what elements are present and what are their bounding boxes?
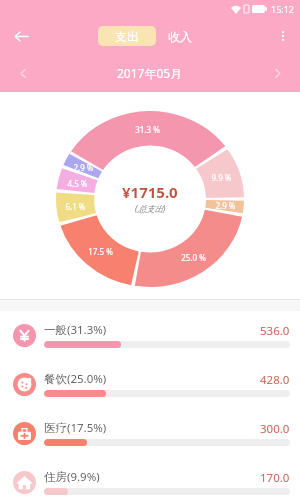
staticText: 支出 bbox=[115, 29, 139, 44]
staticText: 25.0 % bbox=[181, 252, 206, 263]
staticText: 6.1 % bbox=[65, 201, 86, 212]
staticText: 4.5 % bbox=[67, 178, 88, 189]
button[interactable]: 一般(31.3%) bbox=[0, 311, 300, 360]
staticText: 住房(9.9%) bbox=[44, 469, 100, 485]
staticText: 428.0 bbox=[260, 372, 290, 388]
staticText: 31.3 % bbox=[135, 124, 160, 135]
button[interactable]: Previous month bbox=[10, 60, 36, 86]
staticText: 300.0 bbox=[260, 421, 290, 437]
staticText: 医疗(17.5%) bbox=[44, 420, 107, 436]
button[interactable]: Back bbox=[6, 21, 36, 51]
staticText: 9.9 % bbox=[211, 172, 232, 183]
staticText: (总支出) bbox=[135, 203, 166, 215]
staticText: ¥1715.0 bbox=[122, 182, 178, 202]
button[interactable]: 餐饮(25.0%) bbox=[0, 360, 300, 409]
button[interactable]: 住房(9.9%) bbox=[0, 458, 300, 500]
button[interactable]: 收入 bbox=[164, 26, 195, 46]
staticText: 2.9 % bbox=[73, 162, 94, 173]
button[interactable]: More options bbox=[270, 23, 296, 49]
staticText: 536.0 bbox=[260, 323, 290, 339]
staticText: 2.9 % bbox=[215, 200, 236, 211]
staticText: 170.0 bbox=[260, 470, 290, 486]
button[interactable]: 支出 bbox=[98, 26, 156, 46]
button[interactable]: 医疗(17.5%) bbox=[0, 409, 300, 458]
staticText: 收入 bbox=[168, 29, 192, 44]
staticText: 15:12 bbox=[271, 3, 295, 15]
staticText: 2017年05月 bbox=[117, 65, 183, 81]
button[interactable]: Next month bbox=[264, 60, 290, 86]
staticText: 17.5 % bbox=[88, 246, 113, 257]
staticText: 一般(31.3%) bbox=[44, 322, 107, 338]
staticText: 餐饮(25.0%) bbox=[44, 371, 107, 387]
